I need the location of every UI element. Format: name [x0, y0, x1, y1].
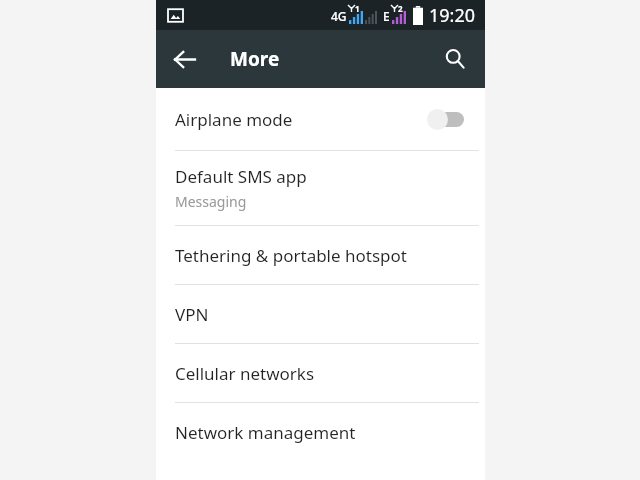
- staticText: Tethering & portable hotspot: [175, 244, 407, 267]
- staticText: Network management: [175, 421, 356, 444]
- staticText: 4G: [331, 8, 347, 24]
- staticText: 1: [355, 3, 360, 14]
- button[interactable]: VPN: [156, 285, 485, 343]
- button[interactable]: Default SMS app: [156, 151, 485, 225]
- button[interactable]: Network management: [156, 403, 485, 461]
- button[interactable]: Airplane mode: [156, 88, 485, 150]
- staticText: 19:20: [429, 3, 476, 28]
- staticText: Cellular networks: [175, 362, 315, 385]
- staticText: 2: [398, 3, 403, 14]
- button[interactable]: Search: [433, 37, 477, 81]
- staticText: More: [230, 46, 280, 72]
- button[interactable]: Airplane mode toggle: [427, 106, 467, 132]
- staticText: VPN: [175, 303, 209, 326]
- staticText: Default SMS app: [175, 165, 307, 188]
- staticText: E: [383, 8, 390, 24]
- button[interactable]: Back: [162, 37, 206, 81]
- staticText: Messaging: [175, 192, 247, 211]
- staticText: Airplane mode: [175, 108, 427, 131]
- button[interactable]: Tethering & portable hotspot: [156, 226, 485, 284]
- button[interactable]: Cellular networks: [156, 344, 485, 402]
